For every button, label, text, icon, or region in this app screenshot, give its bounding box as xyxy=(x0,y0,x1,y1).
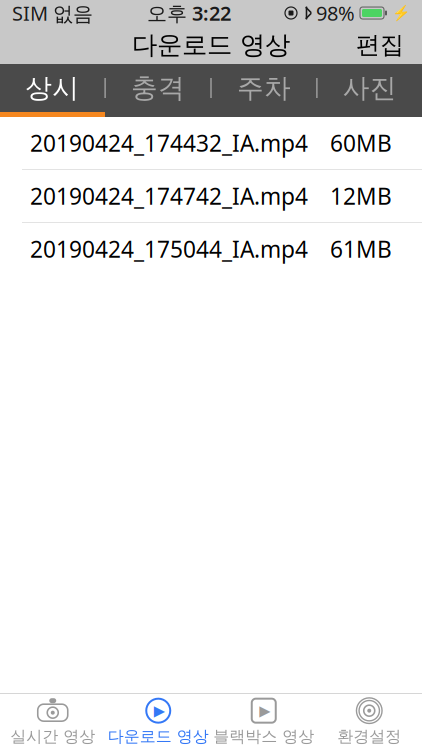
staticText: 다운로드 영상 xyxy=(108,727,209,746)
staticText: 다운로드 영상 xyxy=(132,29,290,60)
staticText: ▶ xyxy=(154,702,165,719)
staticText: 12MB xyxy=(330,181,392,211)
staticText: SIM 없음 xyxy=(12,0,93,26)
staticText: 주차 xyxy=(237,72,291,104)
button[interactable]: 20190424_174742_IA.mp4 xyxy=(0,170,422,222)
button[interactable]: ▶ xyxy=(105,694,211,750)
staticText: 20190424_174742_IA.mp4 xyxy=(30,181,308,211)
staticText: 98% xyxy=(316,0,355,26)
staticText: 61MB xyxy=(330,234,392,264)
staticText: ⚡ xyxy=(392,5,410,21)
button[interactable]: 20190424_174432_IA.mp4 xyxy=(0,117,422,169)
button[interactable]: 주차 xyxy=(212,64,316,112)
staticText: 오후 3:22 xyxy=(147,0,231,26)
staticText: 편집 xyxy=(356,30,404,60)
staticText: 실시간 영상 xyxy=(10,727,95,746)
staticText: 환경설정 xyxy=(337,727,401,746)
staticText: 20190424_174432_IA.mp4 xyxy=(30,128,308,158)
staticText: ▶ xyxy=(259,702,270,719)
staticText: 60MB xyxy=(330,128,392,158)
staticText: 사진 xyxy=(343,72,397,104)
button[interactable]: 사진 xyxy=(318,64,422,112)
staticText: 충격 xyxy=(131,72,185,104)
button[interactable]: 충격 xyxy=(106,64,210,112)
button[interactable]: 상시 xyxy=(0,64,104,112)
staticText: 블랙박스 영상 xyxy=(213,727,314,746)
button[interactable]: ▶ xyxy=(211,694,316,750)
button[interactable]: 환경설정 xyxy=(316,694,422,750)
staticText: 20190424_175044_IA.mp4 xyxy=(30,234,308,264)
staticText: 상시 xyxy=(25,72,79,104)
button[interactable]: 실시간 영상 xyxy=(0,694,105,750)
button[interactable]: 편집 xyxy=(346,24,414,66)
button[interactable]: 20190424_175044_IA.mp4 xyxy=(0,223,422,275)
